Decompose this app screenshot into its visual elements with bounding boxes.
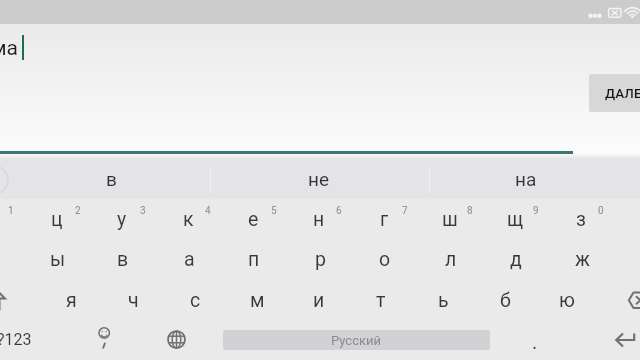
staticText: 9 bbox=[533, 205, 539, 217]
button[interactable]: ю bbox=[535, 280, 599, 320]
staticText: ь bbox=[438, 289, 449, 312]
staticText: ДАЛЕЕ bbox=[605, 85, 640, 101]
button[interactable]: ш bbox=[418, 199, 482, 239]
staticText: б bbox=[500, 289, 511, 312]
button[interactable]: Shift bbox=[0, 281, 24, 321]
staticText: 5 bbox=[271, 205, 277, 217]
button[interactable]: д bbox=[484, 239, 548, 279]
button[interactable]: я bbox=[39, 280, 103, 320]
staticText: 6 bbox=[336, 205, 342, 217]
button[interactable]: не bbox=[269, 159, 369, 199]
staticText: ы bbox=[50, 248, 66, 271]
staticText: и bbox=[313, 289, 325, 312]
staticText: 0 bbox=[598, 205, 604, 217]
button[interactable]: и bbox=[287, 280, 351, 320]
button[interactable]: ы bbox=[26, 239, 90, 279]
button[interactable]: е bbox=[221, 199, 285, 239]
staticText: 7 bbox=[402, 205, 408, 217]
staticText: п bbox=[248, 248, 260, 271]
button[interactable]: т bbox=[349, 280, 413, 320]
staticText: т bbox=[376, 289, 386, 312]
staticText: щ bbox=[507, 208, 524, 231]
staticText: ш bbox=[442, 208, 458, 231]
button[interactable]: л bbox=[419, 239, 483, 279]
button[interactable]: в bbox=[91, 239, 155, 279]
button[interactable]: ?123 bbox=[0, 319, 46, 359]
button[interactable]: п bbox=[222, 239, 286, 279]
button[interactable]: с bbox=[163, 280, 227, 320]
staticText: з bbox=[576, 208, 586, 231]
staticText: а bbox=[184, 248, 195, 271]
staticText: ц bbox=[51, 208, 63, 231]
staticText: в bbox=[106, 168, 117, 190]
other: Status bar bbox=[0, 0, 640, 24]
button[interactable]: о bbox=[353, 239, 417, 279]
staticText: у bbox=[117, 208, 127, 231]
staticText: в bbox=[117, 248, 129, 271]
button[interactable]: ь bbox=[411, 280, 475, 320]
button[interactable]: . bbox=[503, 321, 567, 360]
staticText: к bbox=[183, 208, 194, 231]
button[interactable]: на bbox=[476, 159, 576, 199]
staticText: ?123 bbox=[0, 330, 32, 349]
button[interactable]: ц bbox=[25, 199, 89, 239]
staticText: с bbox=[190, 289, 201, 312]
staticText: г bbox=[380, 208, 389, 231]
staticText: е bbox=[248, 208, 259, 231]
staticText: р bbox=[315, 248, 326, 271]
staticText: 3 bbox=[140, 205, 146, 217]
button[interactable]: Emoji bbox=[72, 321, 136, 360]
button[interactable]: ДАЛЕЕ bbox=[589, 74, 640, 112]
staticText: 1 bbox=[8, 205, 14, 217]
button[interactable]: ж bbox=[550, 239, 614, 279]
staticText: ч bbox=[128, 289, 139, 312]
staticText: н bbox=[313, 208, 325, 231]
staticText: на bbox=[515, 168, 537, 190]
button[interactable]: к bbox=[156, 199, 220, 239]
staticText: ю bbox=[559, 289, 575, 312]
button[interactable]: а bbox=[157, 239, 221, 279]
staticText: м bbox=[250, 289, 265, 312]
button[interactable]: Backspace bbox=[612, 281, 640, 321]
button[interactable]: в bbox=[61, 159, 161, 199]
button[interactable]: м bbox=[225, 280, 289, 320]
staticText: ма bbox=[0, 36, 18, 61]
staticText: не bbox=[308, 168, 330, 190]
staticText: . bbox=[532, 330, 538, 353]
staticText: 4 bbox=[205, 205, 211, 217]
button[interactable]: Enter bbox=[592, 321, 640, 360]
staticText: Русский bbox=[331, 333, 382, 348]
button[interactable]: Русский bbox=[223, 330, 490, 350]
button[interactable]: р bbox=[288, 239, 352, 279]
button[interactable]: б bbox=[473, 280, 537, 320]
staticText: я bbox=[66, 289, 77, 312]
button[interactable]: г bbox=[352, 199, 416, 239]
staticText: о bbox=[379, 248, 391, 271]
button[interactable]: н bbox=[287, 199, 351, 239]
staticText: д bbox=[510, 248, 522, 271]
staticText: 2 bbox=[75, 205, 81, 217]
button[interactable]: з bbox=[549, 199, 613, 239]
button[interactable]: у bbox=[90, 199, 154, 239]
staticText: 8 bbox=[467, 205, 473, 217]
staticText: ж bbox=[575, 248, 590, 271]
staticText: л bbox=[445, 248, 457, 271]
button[interactable]: Change keyboard language bbox=[144, 321, 208, 360]
button[interactable]: ч bbox=[101, 280, 165, 320]
button[interactable]: щ bbox=[483, 199, 547, 239]
